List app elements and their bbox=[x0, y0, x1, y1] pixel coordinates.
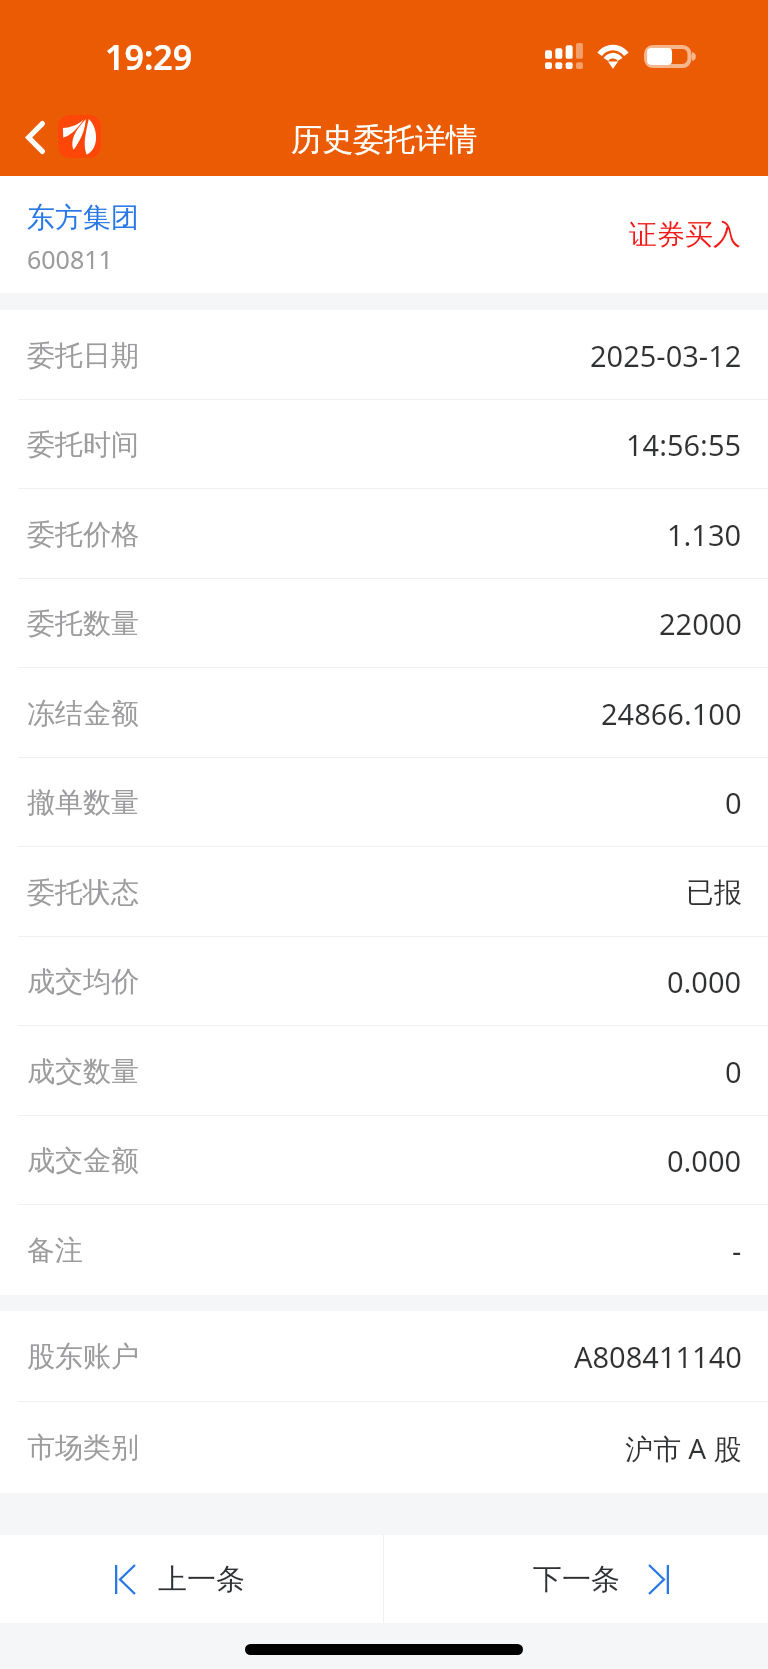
staticText: 沪市 A 股 bbox=[625, 1429, 742, 1467]
staticText: 撤单数量 bbox=[27, 785, 139, 820]
button[interactable]: 下一条 bbox=[384, 1535, 768, 1623]
staticText: 委托数量 bbox=[27, 606, 139, 641]
button[interactable]: 委托数量 bbox=[0, 579, 768, 668]
staticText: 0 bbox=[725, 1052, 742, 1091]
staticText: 14:56:55 bbox=[626, 425, 742, 464]
staticText: 已报 bbox=[686, 875, 742, 910]
button[interactable]: 委托价格 bbox=[0, 489, 768, 579]
button[interactable]: 冻结金额 bbox=[0, 668, 768, 758]
staticText: 下一条 bbox=[533, 1561, 620, 1598]
staticText: 冻结金额 bbox=[27, 696, 139, 731]
button[interactable]: 备注 bbox=[0, 1205, 768, 1295]
staticText: 证券买入 bbox=[629, 217, 741, 252]
button[interactable]: 成交数量 bbox=[0, 1026, 768, 1116]
staticText: 市场类别 bbox=[27, 1430, 139, 1465]
staticText: 0.000 bbox=[667, 1141, 742, 1180]
staticText: 委托时间 bbox=[27, 427, 139, 462]
button[interactable]: 撤单数量 bbox=[0, 758, 768, 847]
staticText: 委托价格 bbox=[27, 517, 139, 552]
staticText: A808411140 bbox=[574, 1337, 742, 1376]
button[interactable]: 成交均价 bbox=[0, 937, 768, 1026]
button[interactable]: 委托状态 bbox=[0, 847, 768, 937]
button[interactable]: 股东账户 bbox=[0, 1311, 768, 1402]
staticText: - bbox=[732, 1231, 742, 1270]
staticText: 1.130 bbox=[667, 515, 742, 554]
staticText: 委托日期 bbox=[27, 338, 139, 373]
staticText: 备注 bbox=[27, 1233, 83, 1268]
staticText: 成交均价 bbox=[27, 964, 139, 999]
staticText: 成交金额 bbox=[27, 1143, 139, 1178]
staticText: 历史委托详情 bbox=[291, 120, 477, 159]
button[interactable]: Back bbox=[13, 115, 57, 159]
button[interactable]: 委托日期 bbox=[0, 310, 768, 400]
button[interactable]: 委托时间 bbox=[0, 400, 768, 489]
button[interactable]: 市场类别 bbox=[0, 1402, 768, 1493]
staticText: 上一条 bbox=[158, 1561, 245, 1598]
button[interactable]: Huatai Securities bbox=[58, 115, 101, 158]
staticText: 0 bbox=[725, 783, 742, 822]
staticText: 股东账户 bbox=[27, 1339, 139, 1374]
button[interactable]: 东方集团 bbox=[0, 176, 768, 293]
staticText: 22000 bbox=[659, 604, 742, 643]
button[interactable]: Previous bbox=[0, 1535, 383, 1623]
staticText: 成交数量 bbox=[27, 1054, 139, 1089]
other: Next bbox=[649, 1565, 669, 1594]
staticText: 19:29 bbox=[105, 34, 193, 80]
staticText: 0.000 bbox=[667, 962, 742, 1001]
staticText: 24866.100 bbox=[601, 694, 742, 733]
staticText: 委托状态 bbox=[27, 875, 139, 910]
staticText: 2025-03-12 bbox=[590, 336, 742, 375]
staticText: 东方集团 bbox=[27, 200, 139, 235]
staticText: 600811 bbox=[27, 242, 113, 276]
button[interactable]: 成交金额 bbox=[0, 1116, 768, 1205]
other: Previous bbox=[115, 1565, 135, 1594]
